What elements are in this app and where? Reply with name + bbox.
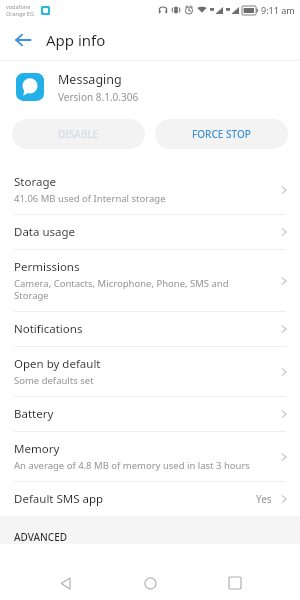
staticText: Camera, Contacts, Microphone, Phone, SMS…	[14, 277, 229, 302]
button[interactable]: Default SMS app	[0, 482, 300, 516]
button[interactable]: Open by default	[0, 347, 300, 396]
button[interactable]: Notifications	[0, 312, 300, 346]
staticText: Yes	[256, 492, 272, 506]
button[interactable]: Data usage	[0, 215, 300, 249]
staticText: Memory	[14, 441, 60, 457]
button[interactable]: Storage	[0, 165, 300, 214]
staticText: Open by default	[14, 356, 101, 372]
staticText: 41.06 MB used of Internal storage	[14, 192, 166, 205]
staticText: Permissions	[14, 259, 80, 275]
staticText: vodafone	[6, 3, 31, 10]
staticText: Orange EG	[6, 10, 34, 17]
staticText: An average of 4.8 MB of memory used in l…	[14, 459, 250, 472]
staticText: Some defaults set	[14, 374, 94, 387]
button[interactable]: Permissions	[0, 250, 300, 311]
staticText: Messaging	[58, 71, 122, 88]
staticText: ADVANCED	[14, 530, 68, 544]
button[interactable]: Back	[6, 23, 40, 57]
button[interactable]: Recent apps	[215, 566, 255, 600]
staticText: Default SMS app	[14, 491, 104, 507]
button[interactable]: Memory	[0, 432, 300, 481]
button[interactable]: Battery	[0, 397, 300, 431]
button[interactable]: Back	[45, 566, 85, 600]
staticText: Notifications	[14, 321, 83, 337]
staticText: Version 8.1.0.306	[58, 90, 139, 104]
staticText: FORCE STOP	[192, 127, 251, 141]
staticText: Data usage	[14, 224, 76, 240]
staticText: App info	[46, 30, 106, 50]
staticText: Battery	[14, 406, 54, 422]
staticText: 9:11 am	[261, 4, 295, 16]
staticText: Storage	[14, 174, 56, 190]
button[interactable]: FORCE STOP	[155, 119, 288, 149]
staticText: DISABLE	[58, 127, 99, 141]
button[interactable]: Home	[130, 566, 170, 600]
button[interactable]: DISABLE	[12, 119, 145, 149]
